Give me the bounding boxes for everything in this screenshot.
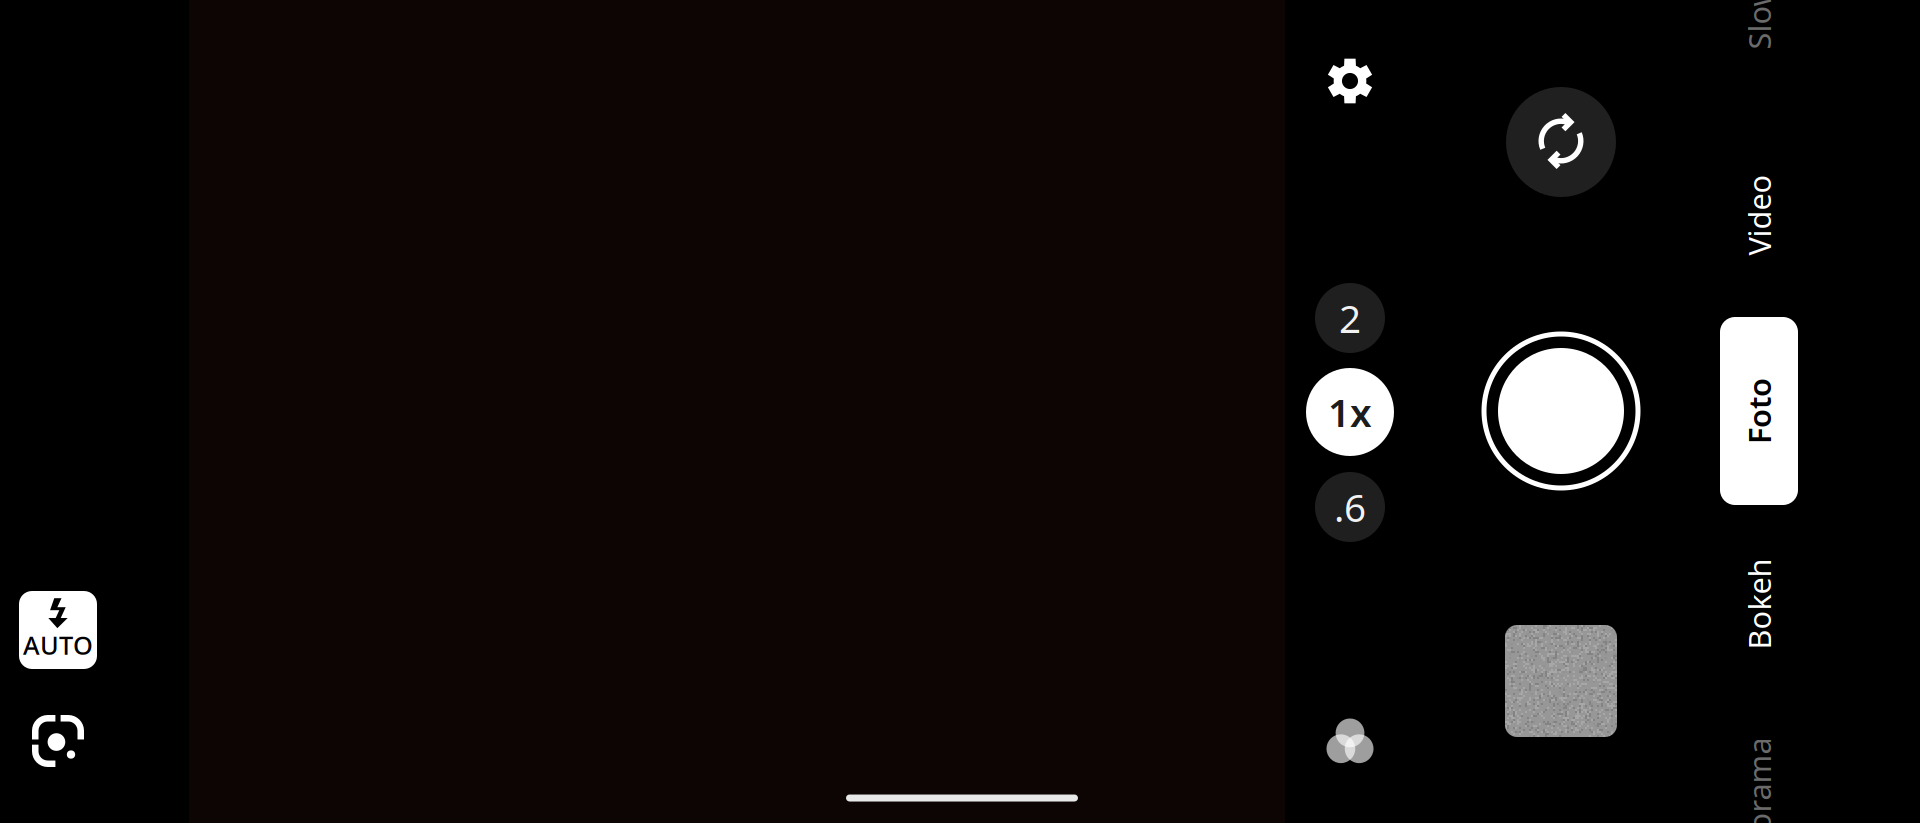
button[interactable]: 2 [1315,283,1385,353]
button[interactable]: Settings [1319,50,1381,112]
staticText: Bokeh [1713,584,1804,624]
button[interactable]: .6 [1315,472,1385,542]
button[interactable]: Visual look up [23,706,93,776]
button[interactable]: 1x [1306,368,1394,456]
button[interactable]: Flash auto [19,591,97,669]
button[interactable]: Filters [1318,710,1382,774]
button[interactable]: Slow [1720,0,1798,110]
staticText: 1x [1328,386,1372,438]
staticText: Foto [1726,391,1792,431]
button[interactable]: Switch camera [1506,87,1616,197]
staticText: .6 [1334,481,1366,533]
button[interactable]: Take photo [1481,331,1641,491]
staticText: Panorama [1684,792,1833,823]
staticText: Slow [1725,0,1792,36]
button[interactable]: Photo library [1505,625,1617,737]
button[interactable]: Bokeh [1720,510,1798,698]
staticText: 2 [1339,292,1361,344]
button[interactable]: Video [1720,121,1798,309]
button[interactable]: Foto [1720,317,1798,505]
staticText: AUTO [23,628,93,662]
staticText: Video [1718,195,1799,235]
button[interactable]: Panorama [1720,718,1798,823]
